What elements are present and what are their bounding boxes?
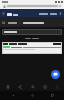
button[interactable]: Search xyxy=(28,83,37,91)
button[interactable]: Bookmarks xyxy=(3,83,12,91)
button[interactable]: Account xyxy=(59,12,62,15)
button[interactable]: Tabs xyxy=(40,83,49,91)
button[interactable] xyxy=(2,42,62,54)
button[interactable]: Back xyxy=(6,91,20,100)
button[interactable]: Menu xyxy=(2,12,5,15)
button[interactable] xyxy=(2,29,62,35)
button[interactable]: More options xyxy=(52,83,61,91)
button[interactable] xyxy=(8,22,17,24)
button[interactable] xyxy=(39,13,48,15)
button[interactable] xyxy=(23,22,44,24)
button[interactable]: Chat xyxy=(51,70,60,79)
button[interactable]: Home xyxy=(25,91,39,100)
button[interactable] xyxy=(7,12,18,16)
button[interactable]: Share xyxy=(15,83,24,91)
button[interactable]: Home xyxy=(2,21,5,24)
button[interactable] xyxy=(50,13,57,15)
button[interactable]: Recents xyxy=(45,91,59,100)
button[interactable]: Reload xyxy=(2,4,62,8)
